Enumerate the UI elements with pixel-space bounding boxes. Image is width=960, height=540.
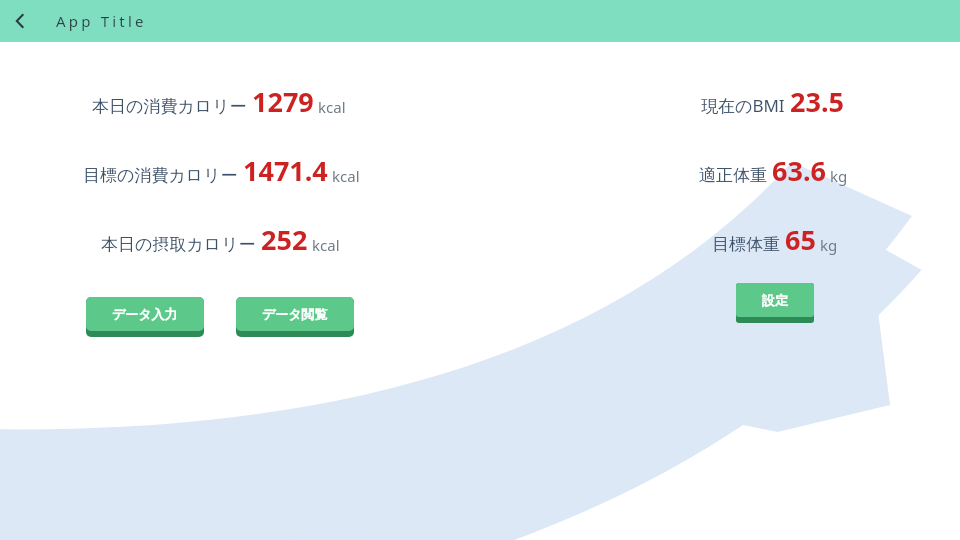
staticText: kcal [332,166,360,186]
button[interactable]: データ入力 [86,297,204,337]
staticText: 設定 [762,292,788,308]
staticText: 本日の消費カロリー [92,96,247,117]
staticText: 適正体重 [699,165,767,186]
staticText: 63.6 [772,152,826,189]
staticText: 目標の消費カロリー [83,165,238,186]
staticText: 現在のBMI [701,94,785,117]
staticText: 目標体重 [712,234,780,255]
staticText: kcal [312,235,340,255]
staticText: kcal [318,97,346,117]
staticText: データ入力 [112,306,178,322]
staticText: 252 [261,221,308,258]
staticText: 1279 [252,83,314,120]
button[interactable]: 設定 [736,283,814,323]
button[interactable]: データ閲覧 [236,297,354,337]
button[interactable]: Back [0,1,40,41]
staticText: 23.5 [790,83,844,120]
staticText: 本日の摂取カロリー [101,234,256,255]
staticText: 1471.4 [243,152,328,189]
staticText: App Title [56,11,147,31]
staticText: 65 [785,221,816,258]
staticText: kg [820,235,838,255]
staticText: kg [830,166,848,186]
staticText: データ閲覧 [262,306,328,322]
